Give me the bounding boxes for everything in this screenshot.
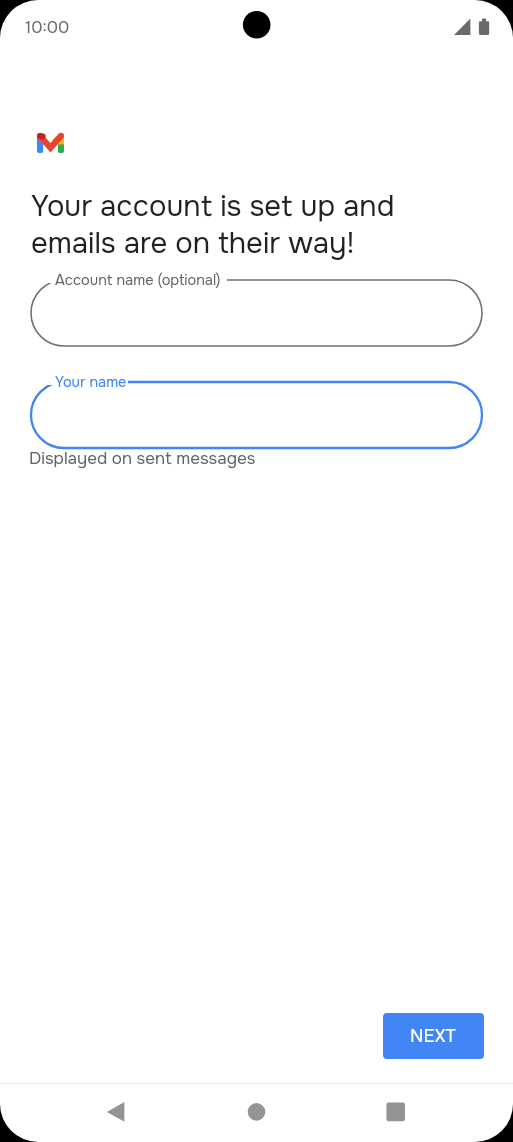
staticText: Your name [55,373,127,392]
button[interactable]: Recent apps [360,1084,432,1142]
button[interactable]: Back [80,1084,152,1142]
button[interactable]: NEXT [383,1013,484,1059]
staticText: Account name (optional) [55,271,221,290]
button[interactable]: Home [221,1084,293,1142]
staticText: Displayed on sent messages [29,448,256,470]
button[interactable] [27,276,486,350]
staticText: NEXT [410,1025,457,1048]
staticText: 10:00 [25,17,70,39]
staticText: Your account is set up and emails are on… [31,188,395,262]
button[interactable] [27,378,486,452]
